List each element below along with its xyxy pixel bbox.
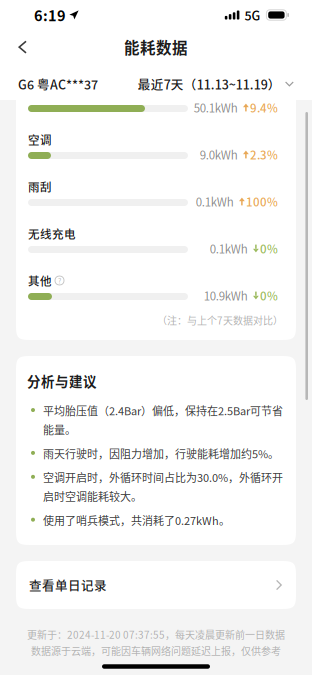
staticText: 0.1kWh — [210, 240, 248, 257]
staticText: 雨刮 — [28, 178, 52, 195]
staticText: 空调 — [28, 131, 52, 148]
staticText: 分析与建议 — [27, 371, 97, 390]
staticText: 9.4% — [250, 99, 278, 116]
staticText: 10.9kWh — [204, 287, 248, 304]
staticText: 5G — [244, 6, 260, 24]
staticText: ? — [58, 275, 61, 285]
staticText: 50.1kWh — [194, 99, 238, 116]
staticText: 空调开启时，外循环时间占比为30.0%，外循环开启时空调能耗较大。 — [43, 469, 283, 504]
staticText: 其他 — [28, 272, 52, 289]
staticText: 0.1kWh — [196, 193, 234, 210]
staticText: 2.3% — [250, 146, 278, 163]
staticText: 100% — [246, 193, 278, 210]
staticText: 0% — [260, 287, 278, 304]
staticText: 最近7天（11.13~11.19） — [138, 75, 281, 93]
staticText: 6:19 — [34, 4, 66, 25]
staticText: 平均胎压值（2.4Bar）偏低，保持在2.5Bar可节省能量。 — [43, 402, 283, 437]
staticText: G6 粤AC***37 — [18, 75, 98, 93]
staticText: （注：与上个7天数据对比） — [157, 313, 283, 327]
staticText: 能耗数据 — [124, 36, 188, 58]
staticText: 查看单日记录 — [29, 576, 107, 594]
staticText: 雨天行驶时，因阻力增加，行驶能耗增加约5%。 — [43, 445, 279, 461]
button[interactable]: 最近7天（11.13~11.19） — [138, 75, 294, 93]
staticText: 无线充电 — [28, 225, 76, 242]
button[interactable]: 返回 — [0, 32, 48, 62]
button[interactable]: 查看单日记录 — [16, 561, 296, 609]
staticText: 更新于：2024-11-20 07:37:55，每天凌晨更新前一日数据 — [27, 627, 285, 641]
staticText: 0% — [260, 240, 278, 257]
staticText: 9.0kWh — [200, 146, 238, 163]
staticText: 使用了哨兵模式，共消耗了0.27kWh。 — [43, 512, 230, 528]
staticText: 数据源于云端，可能因车辆网络问题延迟上报，仅供参考 — [31, 643, 281, 658]
